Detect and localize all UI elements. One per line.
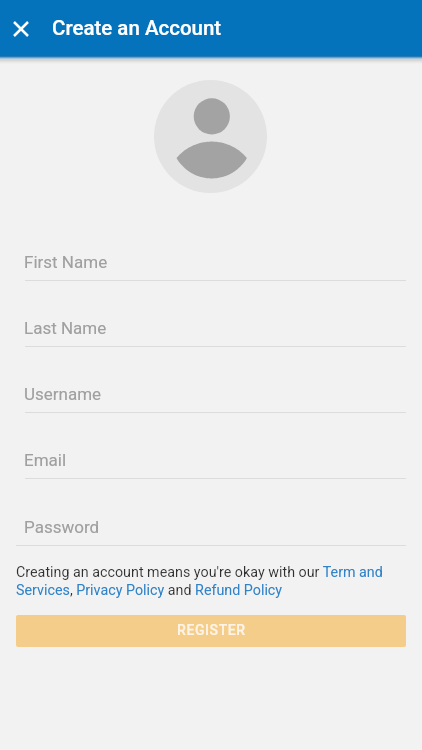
staticText: Creating an account means you're okay wi… [16,564,408,599]
staticText: Password [24,517,100,537]
button[interactable]: Password [0,479,422,545]
staticText: First Name [24,252,108,272]
staticText: REGISTER [177,622,246,638]
button[interactable]: REGISTER [16,615,406,647]
staticText: Create an Account [52,16,222,40]
button[interactable]: Last Name [0,281,422,346]
button[interactable]: Close [0,8,41,49]
staticText: Last Name [24,318,107,338]
staticText: Username [24,384,102,404]
staticText: Email [24,450,67,470]
button[interactable]: First Name [0,215,422,280]
button[interactable]: Email [0,413,422,478]
button[interactable]: Username [0,347,422,412]
